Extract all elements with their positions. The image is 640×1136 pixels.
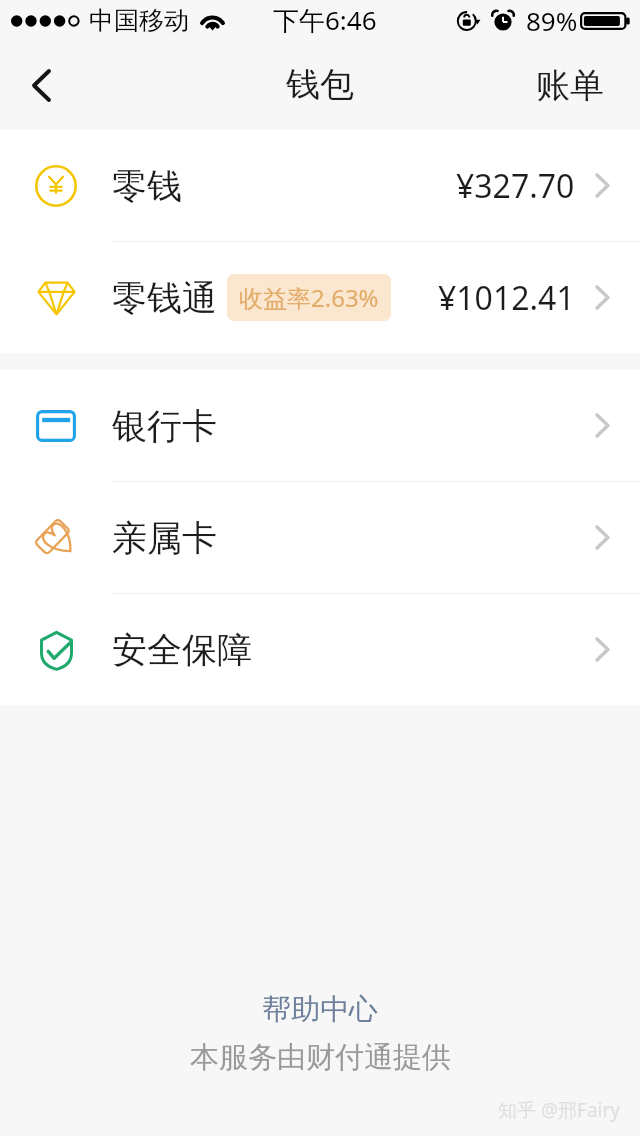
button[interactable]: 零钱通 [0, 242, 640, 353]
staticText: 银行卡 [112, 404, 217, 448]
staticText: 知乎 @邢Fairy [498, 1097, 620, 1123]
button[interactable]: 安全保障 [0, 594, 640, 705]
staticText: 下午6:46 [273, 2, 377, 38]
staticText: 89% [526, 3, 578, 38]
button[interactable]: 帮助中心 [242, 987, 398, 1032]
staticText: 零钱 [112, 164, 182, 208]
staticText: 收益率2.63% [239, 281, 379, 314]
staticText: ¥1012.41 [438, 276, 575, 320]
staticText: 亲属卡 [112, 516, 217, 560]
staticText: 中国移动 [89, 5, 189, 36]
staticText: 零钱通 [112, 276, 217, 320]
staticText: 帮助中心 [262, 991, 378, 1028]
staticText: 安全保障 [112, 628, 252, 672]
button[interactable]: 零钱 [0, 130, 640, 241]
button[interactable]: 账单 [512, 49, 640, 124]
button[interactable]: 银行卡 [0, 370, 640, 481]
button[interactable]: Back [0, 42, 84, 130]
staticText: 账单 [536, 64, 604, 107]
staticText: ¥327.70 [456, 164, 575, 208]
button[interactable]: 亲属卡 [0, 482, 640, 593]
staticText: 本服务由财付通提供 [190, 1039, 451, 1076]
staticText: 钱包 [286, 63, 354, 106]
